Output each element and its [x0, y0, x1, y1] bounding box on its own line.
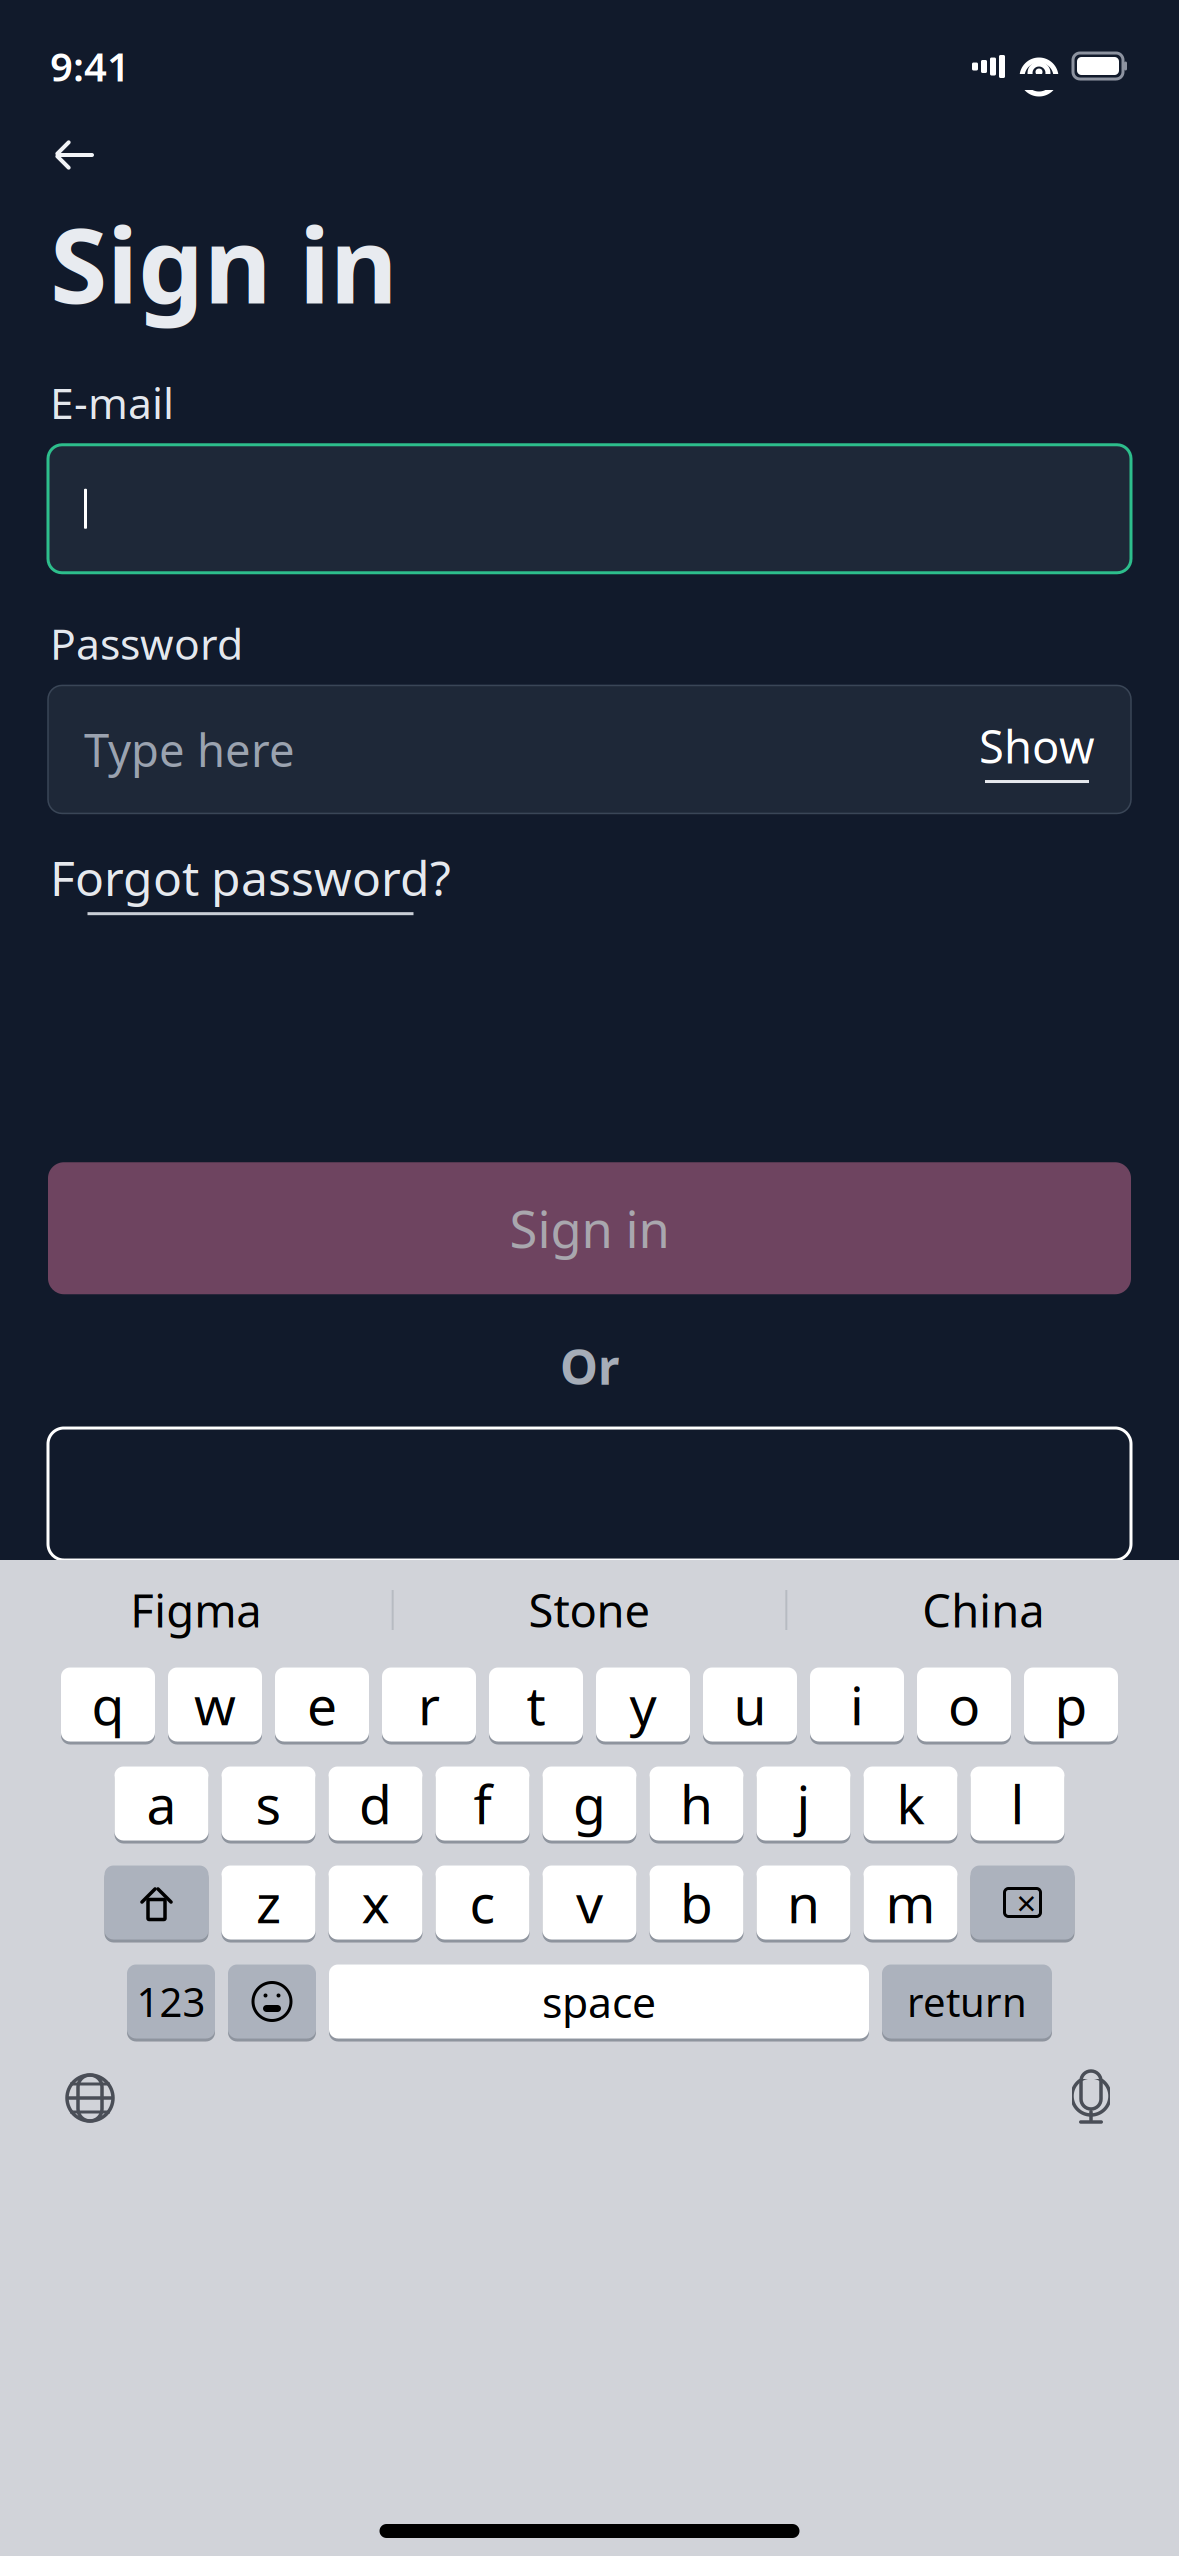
staticText: g — [573, 1768, 606, 1839]
staticText: w — [194, 1669, 236, 1740]
button[interactable]: h — [649, 1765, 743, 1842]
button[interactable] — [48, 445, 1131, 573]
button[interactable]: w — [168, 1666, 262, 1743]
button[interactable]: Emoji — [228, 1963, 316, 2040]
button[interactable]: q — [61, 1666, 155, 1743]
staticText: Figma — [130, 1580, 261, 1640]
staticText: l — [1010, 1768, 1024, 1839]
button[interactable]: j — [756, 1765, 850, 1842]
button[interactable]: Forgot password? — [50, 839, 451, 921]
staticText: space — [542, 1973, 656, 2030]
button[interactable]: China — [787, 1570, 1179, 1650]
button[interactable]: t — [489, 1666, 583, 1743]
staticText: z — [256, 1867, 281, 1938]
button[interactable]: Switch keyboard — [62, 2070, 118, 2126]
button[interactable]: m — [863, 1864, 957, 1941]
staticText: Password — [50, 615, 243, 671]
staticText: v — [576, 1867, 603, 1938]
staticText: s — [255, 1768, 281, 1839]
button[interactable]: o — [917, 1666, 1011, 1743]
staticText: b — [680, 1867, 713, 1938]
staticText: o — [948, 1669, 980, 1740]
staticText: y — [629, 1669, 656, 1740]
button[interactable]: c — [435, 1864, 529, 1941]
button[interactable]: b — [649, 1864, 743, 1941]
staticText: Show — [979, 716, 1095, 776]
button[interactable]: space — [329, 1963, 869, 2040]
staticText: a — [146, 1768, 176, 1839]
button[interactable] — [48, 1428, 1131, 1560]
staticText: Or — [560, 1334, 619, 1398]
staticText: 123 — [136, 1975, 205, 2028]
button[interactable]: e — [275, 1666, 369, 1743]
button[interactable]: d — [328, 1765, 422, 1842]
staticText: n — [787, 1867, 820, 1938]
button[interactable]: i — [810, 1666, 904, 1743]
button[interactable]: k — [863, 1765, 957, 1842]
staticText: c — [469, 1867, 495, 1938]
staticText: j — [796, 1768, 810, 1839]
staticText: x — [361, 1867, 389, 1938]
staticText: f — [473, 1768, 491, 1839]
staticText: e — [307, 1669, 337, 1740]
button[interactable]: Type here — [48, 685, 1131, 813]
button[interactable]: s — [221, 1765, 315, 1842]
button[interactable]: x — [328, 1864, 422, 1941]
button[interactable]: return — [882, 1963, 1052, 2040]
button[interactable]: Delete — [970, 1864, 1074, 1941]
button[interactable]: Stone — [394, 1570, 785, 1650]
button[interactable]: 123 — [127, 1963, 215, 2040]
button[interactable]: Shift — [104, 1864, 208, 1941]
staticText: h — [680, 1768, 713, 1839]
button[interactable]: Figma — [0, 1570, 392, 1650]
staticText: d — [359, 1768, 392, 1839]
staticText: t — [526, 1669, 545, 1740]
button[interactable]: Back — [46, 124, 104, 186]
staticText: k — [896, 1768, 924, 1839]
staticText: p — [1054, 1669, 1087, 1740]
staticText: China — [922, 1580, 1044, 1640]
button[interactable]: v — [542, 1864, 636, 1941]
button[interactable]: Dictation — [1065, 2068, 1117, 2128]
staticText: × — [1016, 1879, 1036, 1925]
button[interactable]: u — [703, 1666, 797, 1743]
staticText: return — [907, 1975, 1027, 2028]
button[interactable]: r — [382, 1666, 476, 1743]
button[interactable]: z — [221, 1864, 315, 1941]
staticText: r — [418, 1669, 440, 1740]
staticText: Forgot password? — [50, 845, 451, 909]
staticText: i — [850, 1669, 864, 1740]
button[interactable]: g — [542, 1765, 636, 1842]
staticText: q — [91, 1669, 124, 1740]
staticText: Type here — [84, 719, 295, 779]
staticText: Sign in — [509, 1195, 669, 1262]
staticText: E-mail — [50, 374, 174, 431]
staticText: u — [733, 1669, 766, 1740]
staticText: m — [885, 1867, 935, 1938]
staticText: Stone — [528, 1580, 650, 1640]
button[interactable]: Sign in — [48, 1162, 1131, 1294]
button[interactable]: a — [114, 1765, 208, 1842]
button[interactable]: f — [435, 1765, 529, 1842]
button[interactable]: y — [596, 1666, 690, 1743]
button[interactable]: p — [1024, 1666, 1118, 1743]
button[interactable]: l — [970, 1765, 1064, 1842]
staticText: Sign in — [50, 194, 398, 332]
staticText: 9:41 — [50, 39, 130, 92]
button[interactable]: n — [756, 1864, 850, 1941]
